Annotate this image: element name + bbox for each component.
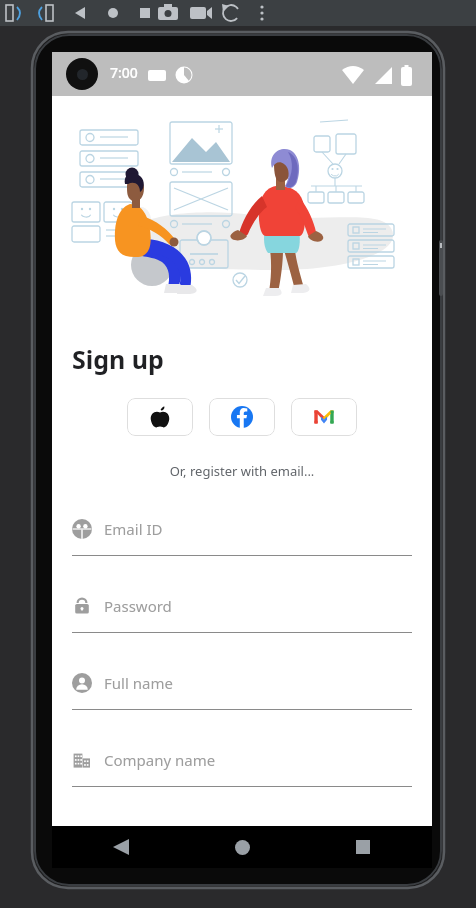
button[interactable]: Company name xyxy=(52,733,432,810)
button[interactable]: Password xyxy=(52,579,432,656)
button[interactable]: Full name xyxy=(52,656,432,733)
staticText: Email ID xyxy=(104,519,163,539)
staticText: Company name xyxy=(104,750,216,770)
staticText: Password xyxy=(104,596,172,616)
button[interactable]: Home xyxy=(225,830,259,864)
button[interactable]: Sign up with Google xyxy=(291,398,357,436)
staticText: Full name xyxy=(104,673,173,693)
staticText: 7:00 xyxy=(110,63,138,82)
button[interactable]: Sign up with Apple xyxy=(127,398,193,436)
button[interactable]: Email ID xyxy=(52,502,432,579)
button[interactable]: Sign up with Facebook xyxy=(209,398,275,436)
button[interactable]: Recent apps xyxy=(346,830,380,864)
button[interactable]: Back xyxy=(104,830,138,864)
staticText: Or, register with email... xyxy=(52,462,432,480)
staticText: Sign up xyxy=(72,342,164,376)
